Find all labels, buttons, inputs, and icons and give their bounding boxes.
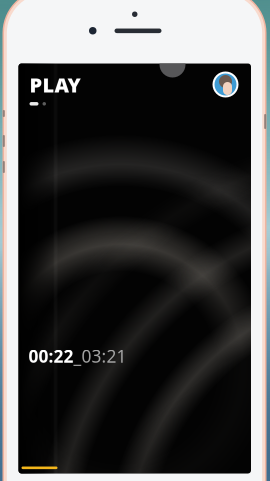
staticText: _03:21 xyxy=(73,344,126,367)
staticText: 00:22 xyxy=(28,344,73,367)
button[interactable]: Profile xyxy=(212,71,238,97)
staticText: PLAY xyxy=(29,71,80,98)
